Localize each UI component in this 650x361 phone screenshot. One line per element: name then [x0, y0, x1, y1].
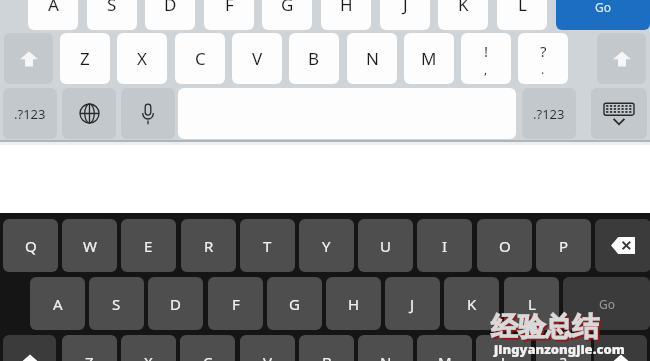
staticText: K [467, 294, 477, 314]
button[interactable]: V [232, 33, 282, 84]
button[interactable]: L [504, 277, 559, 330]
button[interactable]: T [240, 219, 295, 272]
button[interactable]: .?123 [3, 88, 57, 139]
button[interactable]: Y [299, 219, 354, 272]
staticText: . [541, 61, 545, 77]
staticText: J [410, 294, 415, 314]
staticText: A [53, 294, 63, 314]
button[interactable]: K [438, 0, 488, 30]
button[interactable]: B [299, 335, 354, 361]
staticText: D [164, 0, 177, 16]
button[interactable]: I [417, 219, 472, 272]
button[interactable]: H [321, 0, 371, 30]
button[interactable]: A [28, 0, 78, 30]
button[interactable]: X [121, 335, 176, 361]
button[interactable]: S [89, 277, 144, 330]
button[interactable]: G [267, 277, 322, 330]
button[interactable]: F [204, 0, 254, 30]
staticText: Z [85, 352, 94, 361]
button[interactable]: P [536, 219, 591, 272]
button[interactable]: Q [3, 219, 58, 272]
button[interactable]: X [117, 33, 167, 84]
staticText: Go [595, 0, 611, 15]
button[interactable]: N [358, 335, 413, 361]
staticText: B [322, 352, 332, 361]
button[interactable]: D [145, 0, 195, 30]
staticText: G [289, 294, 300, 314]
staticText: 经验总结 [491, 310, 599, 344]
button[interactable]: Shift [3, 335, 56, 361]
button[interactable]: L [497, 0, 547, 30]
button[interactable]: S [87, 0, 137, 30]
button[interactable]: G [262, 0, 312, 30]
staticText: D [170, 294, 181, 314]
staticText: M [421, 47, 437, 70]
button[interactable]: .?123 [522, 88, 576, 139]
button[interactable]: N [347, 33, 397, 84]
staticText: Y [322, 236, 331, 256]
button[interactable]: Change language [62, 88, 116, 139]
staticText: S [107, 0, 117, 16]
staticText: ? [540, 41, 547, 61]
button[interactable]: J [385, 277, 440, 330]
staticText: K [458, 0, 469, 16]
button[interactable]: Shift [594, 335, 647, 361]
button[interactable]: K [444, 277, 499, 330]
button[interactable]: C [180, 335, 235, 361]
button[interactable]: J [380, 0, 430, 30]
staticText: X [137, 47, 147, 70]
button[interactable]: Shift [4, 33, 53, 84]
button[interactable]: W [62, 219, 117, 272]
staticText: ! [484, 41, 489, 61]
staticText: L [528, 294, 536, 314]
button[interactable]: Z [62, 335, 117, 361]
staticText: ! [501, 352, 506, 361]
button[interactable]: H [326, 277, 381, 330]
button[interactable]: Go [563, 277, 650, 330]
button[interactable]: A [30, 277, 85, 330]
staticText: E [144, 236, 153, 256]
staticText: B [308, 47, 320, 70]
staticText: Q [25, 236, 37, 256]
button[interactable]: U [358, 219, 413, 272]
staticText: N [380, 352, 392, 361]
button[interactable]: D [148, 277, 203, 330]
staticText: .?123 [14, 105, 46, 123]
staticText: X [144, 352, 153, 361]
button[interactable]: E [121, 219, 176, 272]
button[interactable]: C [175, 33, 225, 84]
staticText: R [204, 236, 214, 256]
button[interactable]: R [181, 219, 236, 272]
staticText: P [559, 236, 569, 256]
button[interactable]: M [417, 335, 472, 361]
button[interactable]: O [477, 219, 532, 272]
button[interactable]: ? [518, 33, 568, 84]
button[interactable]: Backspace [595, 219, 650, 272]
button[interactable]: B [289, 33, 339, 84]
button[interactable]: Voice input [121, 88, 175, 139]
button[interactable]: Hide keyboard [591, 88, 647, 139]
button[interactable]: ! [461, 33, 511, 84]
button[interactable]: V [240, 335, 295, 361]
button[interactable]: ? [536, 335, 591, 361]
staticText: F [232, 294, 240, 314]
staticText: W [83, 236, 97, 256]
button[interactable]: ! [476, 335, 531, 361]
staticText: G [281, 0, 294, 16]
staticText: F [225, 0, 234, 16]
staticText: O [499, 236, 511, 256]
button[interactable]: Shift [597, 33, 646, 84]
button[interactable]: Z [60, 33, 110, 84]
staticText: I [442, 236, 448, 256]
staticText: T [263, 236, 272, 256]
staticText: U [380, 236, 391, 256]
staticText: Go [599, 296, 615, 312]
staticText: 经验总结 [493, 312, 601, 346]
staticText: H [340, 0, 353, 16]
staticText: H [348, 294, 360, 314]
button[interactable]: M [404, 33, 454, 84]
staticText: V [252, 47, 263, 70]
button[interactable]: F [208, 277, 263, 330]
button[interactable]: Go [556, 0, 650, 30]
